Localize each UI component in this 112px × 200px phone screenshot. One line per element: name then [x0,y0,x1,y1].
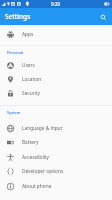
staticText: About phone [22,183,52,190]
staticText: 9:20 [51,1,61,7]
staticText: Language & input [22,125,63,132]
staticText: Apps [22,31,34,38]
button[interactable]: Search [97,11,109,23]
button[interactable]: Security [0,86,112,100]
staticText: Location [22,76,42,83]
staticText: Developer options [22,168,64,175]
button[interactable]: Apps [0,26,112,43]
staticText: Users [22,62,35,69]
button[interactable]: Developer options [0,164,112,179]
button[interactable]: Users [0,58,112,72]
button[interactable]: About phone [0,179,112,193]
button[interactable]: Language & input [0,121,112,135]
staticText: Battery [22,139,39,146]
staticText: Accessibility [22,154,50,161]
staticText: Security [22,90,41,97]
button[interactable]: Accessibility [0,150,112,164]
staticText: Personal [7,50,24,55]
staticText: System [7,110,21,115]
staticText: Settings [5,12,31,21]
button[interactable]: Location [0,72,112,86]
button[interactable]: Battery [0,135,112,150]
